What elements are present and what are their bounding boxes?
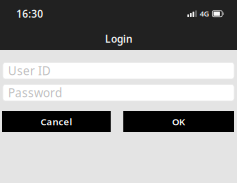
button[interactable]: User ID (3, 62, 234, 79)
staticText: Cancel (40, 115, 72, 128)
staticText: Password (8, 85, 62, 101)
staticText: Login (105, 32, 132, 46)
button[interactable]: Password (3, 84, 234, 101)
button[interactable]: OK (123, 111, 234, 132)
staticText: User ID (8, 63, 51, 79)
staticText: 16:30 (16, 7, 43, 21)
staticText: OK (172, 115, 185, 128)
button[interactable]: Cancel (2, 111, 111, 132)
staticText: 4G (200, 9, 209, 19)
